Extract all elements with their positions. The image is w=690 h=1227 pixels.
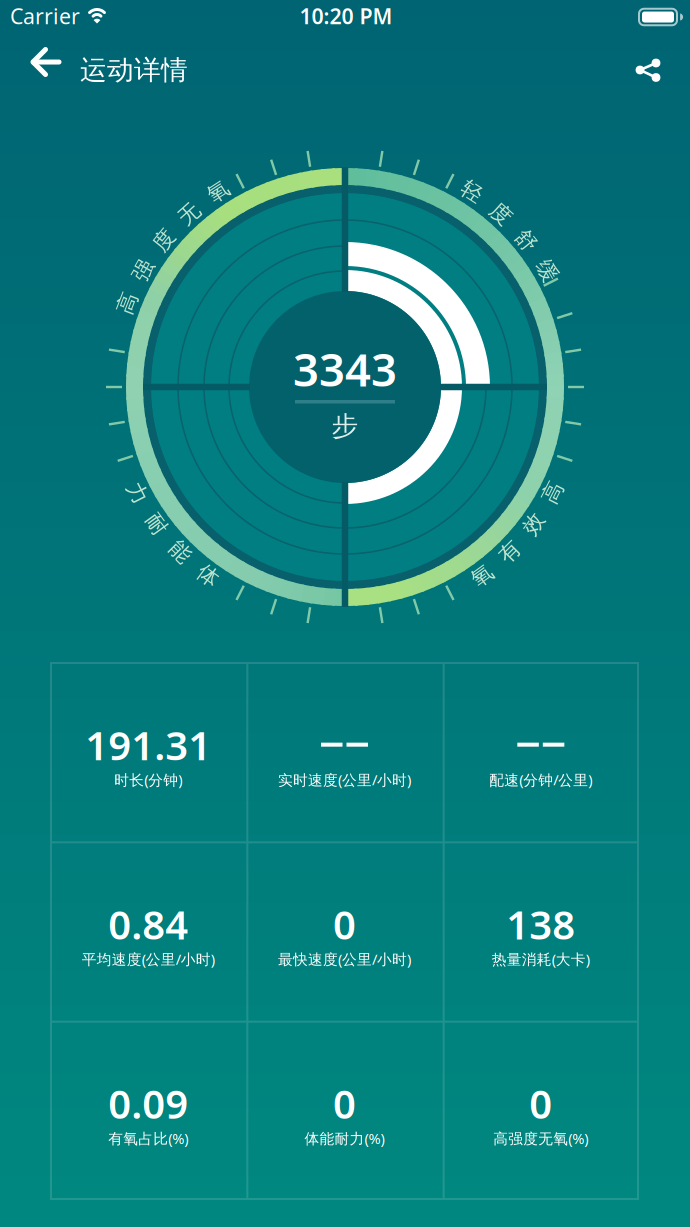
staticText: 配速(分钟/公里) bbox=[489, 770, 592, 789]
staticText: 氧 bbox=[471, 562, 492, 589]
staticText: 有 bbox=[499, 539, 520, 565]
staticText: 热量消耗(大卡) bbox=[492, 949, 590, 969]
staticText: 运动详情 bbox=[80, 54, 188, 86]
staticText: 0.84 bbox=[108, 897, 188, 950]
staticText: 轻 bbox=[461, 178, 482, 205]
staticText: 力 bbox=[127, 480, 148, 506]
staticText: 3343 bbox=[293, 339, 397, 399]
staticText: 138 bbox=[506, 897, 575, 950]
staticText: 度 bbox=[153, 227, 174, 253]
staticText: 体能耐力(%) bbox=[304, 1129, 384, 1148]
staticText: 强 bbox=[133, 257, 154, 284]
button[interactable]: Share bbox=[625, 47, 671, 93]
staticText: 无 bbox=[179, 201, 200, 227]
staticText: 0 bbox=[333, 897, 356, 950]
staticText: 体 bbox=[197, 562, 218, 589]
staticText: 10:20 PM bbox=[299, 2, 392, 30]
staticText: 0 bbox=[333, 1077, 356, 1130]
staticText: 氧 bbox=[208, 178, 229, 205]
staticText: 能 bbox=[170, 539, 191, 565]
staticText: Carrier bbox=[10, 2, 80, 30]
staticText: 191.31 bbox=[85, 718, 211, 771]
staticText: 时长(分钟) bbox=[114, 770, 182, 789]
staticText: 耐 bbox=[146, 511, 167, 537]
staticText: 度 bbox=[490, 201, 511, 227]
staticText: 高 bbox=[117, 290, 138, 317]
staticText: 高强度无氧(%) bbox=[493, 1129, 588, 1148]
staticText: 0.09 bbox=[108, 1077, 188, 1130]
staticText: 实时速度(公里/小时) bbox=[278, 770, 411, 789]
staticText: 有氧占比(%) bbox=[108, 1129, 188, 1148]
staticText: 最快速度(公里/小时) bbox=[278, 949, 411, 969]
staticText: 0 bbox=[529, 1077, 552, 1130]
staticText: 舒 bbox=[516, 227, 537, 253]
staticText: 缓 bbox=[536, 257, 557, 284]
staticText: 平均速度(公里/小时) bbox=[82, 949, 215, 969]
staticText: 效 bbox=[523, 511, 544, 537]
staticText: 高 bbox=[542, 480, 563, 506]
staticText: 步 bbox=[331, 410, 358, 442]
button[interactable]: Back bbox=[23, 48, 69, 94]
